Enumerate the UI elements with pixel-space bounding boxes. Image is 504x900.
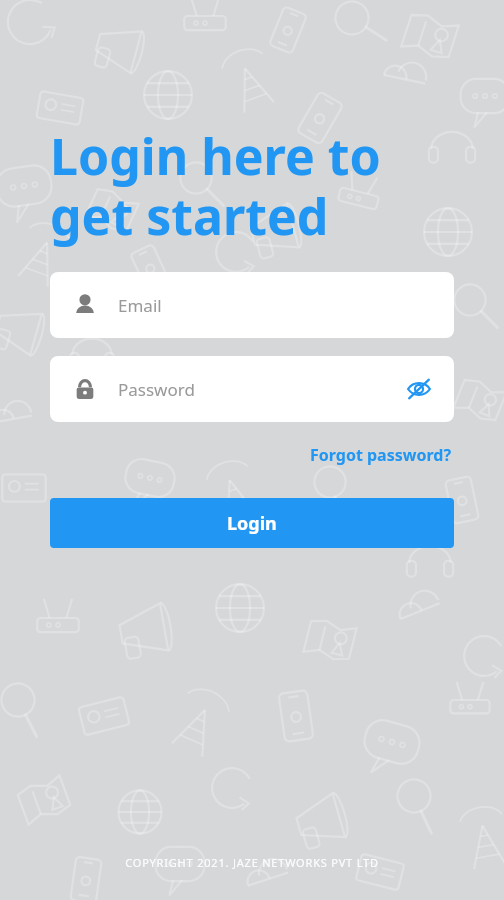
button[interactable]: Forgot password? (306, 440, 456, 470)
staticText: Login (227, 511, 277, 536)
button[interactable]: Email (50, 272, 454, 338)
button[interactable]: Password (50, 356, 454, 422)
staticText: Login here to get started (50, 122, 381, 250)
staticText: Password (118, 378, 402, 401)
button[interactable]: Login (50, 498, 454, 548)
staticText: Email (118, 294, 162, 317)
button[interactable]: Show password (402, 372, 436, 406)
staticText: Forgot password? (310, 444, 452, 466)
staticText: COPYRIGHT 2021. JAZE NETWORKS PVT LTD (0, 855, 504, 870)
